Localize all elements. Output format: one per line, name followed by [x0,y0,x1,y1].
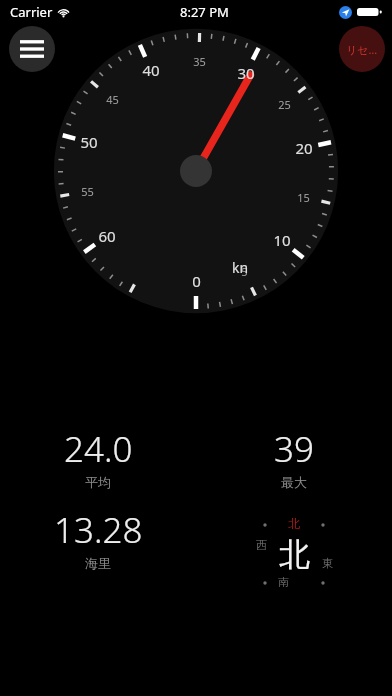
button[interactable]: Menu [9,26,55,72]
staticText: 東 [322,556,333,570]
staticText: 60 [98,226,116,246]
button[interactable]: 13.28 [0,506,196,571]
staticText: 北 [288,516,300,531]
staticText: 40 [142,60,160,80]
staticText: 13.28 [54,506,143,554]
staticText: 0 [192,271,201,291]
button[interactable]: Compass [246,506,342,602]
staticText: 平均 [85,474,111,490]
staticText: 20 [295,138,313,158]
staticText: Carrier [10,3,53,21]
staticText: 15 [297,190,310,205]
button[interactable]: リセ… [339,26,385,72]
staticText: 45 [106,92,119,107]
staticText: 西 [256,538,267,552]
staticText: 南 [278,575,289,589]
staticText: 北 [279,535,310,574]
staticText: 10 [273,230,291,250]
staticText: リセ… [346,42,378,57]
staticText: 55 [81,184,94,199]
staticText: 25 [278,97,291,112]
staticText: 35 [193,54,206,69]
staticText: 39 [274,425,314,473]
button[interactable]: 39 [196,425,392,490]
staticText: 24.0 [64,425,133,473]
staticText: 50 [80,132,98,152]
staticText: kn [232,258,249,277]
staticText: 海里 [85,555,111,571]
staticText: 30 [237,63,255,83]
staticText: 5 [241,264,248,279]
staticText: 最大 [281,474,307,490]
button[interactable]: 24.0 [0,425,196,490]
staticText: 8:27 PM [180,3,229,21]
